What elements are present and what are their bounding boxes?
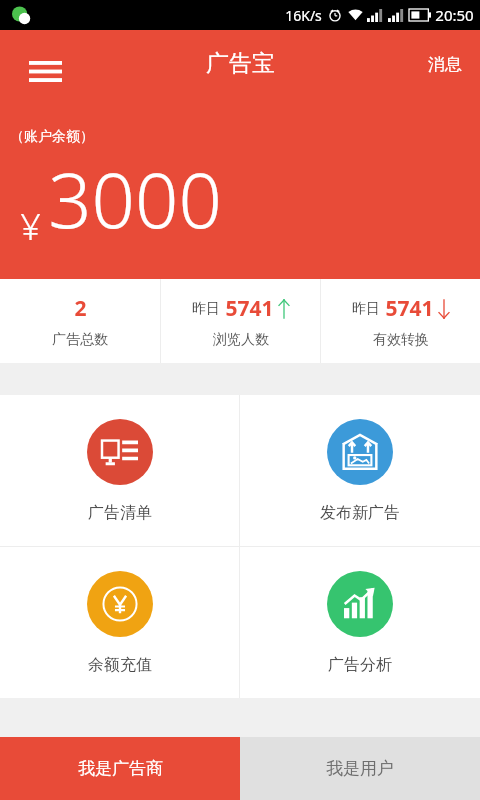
button[interactable]: 2	[0, 279, 160, 363]
staticText: 余额充值	[88, 655, 152, 675]
staticText: 昨日	[352, 300, 380, 318]
staticText: 16K/s	[285, 6, 322, 25]
button[interactable]: 余额充值	[0, 547, 239, 698]
staticText: 昨日	[192, 300, 220, 318]
button[interactable]: 昨日	[321, 279, 480, 363]
staticText: 发布新广告	[320, 503, 400, 523]
staticText: 5741	[225, 294, 274, 323]
staticText: 广告总数	[52, 331, 108, 349]
button[interactable]: Menu	[18, 44, 72, 98]
staticText: 2	[74, 294, 87, 323]
staticText: （账户余额）	[10, 128, 94, 146]
button[interactable]: 广告清单	[0, 395, 239, 546]
staticText: 我是广告商	[78, 758, 163, 779]
staticText: 我是用户	[326, 758, 394, 779]
staticText: ¥	[20, 202, 41, 251]
staticText: 广告分析	[328, 655, 392, 675]
staticText: 广告宝	[206, 49, 275, 78]
staticText: 广告清单	[88, 503, 152, 523]
button[interactable]: 我是用户	[240, 737, 480, 800]
staticText: 有效转换	[373, 331, 429, 349]
staticText: 浏览人数	[213, 331, 269, 349]
button[interactable]: 广告分析	[240, 547, 480, 698]
staticText: 5741	[385, 294, 434, 323]
button[interactable]: 发布新广告	[240, 395, 480, 546]
staticText: 20:50	[435, 5, 474, 25]
staticText: 消息	[428, 54, 462, 75]
button[interactable]: 消息	[410, 40, 480, 89]
button[interactable]: 我是广告商	[0, 737, 240, 800]
button[interactable]: 昨日	[161, 279, 320, 363]
staticText: 3000	[48, 147, 222, 251]
